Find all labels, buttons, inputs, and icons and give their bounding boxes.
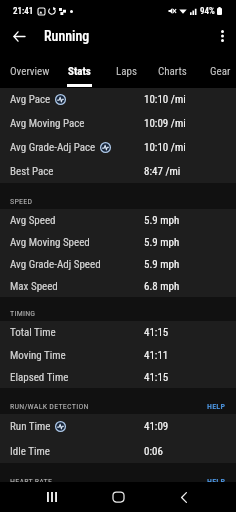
- staticText: 10:09 /mi: [144, 117, 186, 130]
- button[interactable]: Avg Pace: [0, 88, 236, 111]
- staticText: Max Speed: [10, 280, 58, 293]
- staticText: 8:47 /mi: [144, 165, 181, 178]
- button[interactable]: Back: [163, 482, 205, 512]
- staticText: 41:15: [144, 371, 169, 384]
- staticText: Run Time: [10, 420, 51, 433]
- button[interactable]: More options: [208, 22, 236, 50]
- staticText: Avg Grade-Adj Speed: [10, 258, 101, 271]
- staticText: Overview: [10, 65, 50, 78]
- staticText: HEART RATE: [10, 477, 53, 482]
- button[interactable]: Gear: [200, 50, 236, 88]
- button[interactable]: Avg Grade-Adj Pace: [0, 135, 236, 159]
- staticText: Stats: [68, 65, 91, 78]
- button[interactable]: Navigate up: [0, 22, 38, 50]
- button[interactable]: Avg Grade-Adj Speed: [0, 253, 236, 275]
- staticText: Avg Moving Speed: [10, 236, 90, 249]
- staticText: 6.8 mph: [144, 280, 180, 293]
- staticText: 5.9 mph: [144, 258, 180, 271]
- button[interactable]: Moving Time: [0, 344, 236, 366]
- staticText: HELP: [207, 477, 226, 482]
- staticText: Avg Speed: [10, 214, 56, 227]
- button[interactable]: HELP: [207, 477, 226, 482]
- staticText: 41:11: [144, 349, 169, 362]
- staticText: Best Pace: [10, 165, 54, 178]
- staticText: 0:06: [144, 445, 163, 458]
- button[interactable]: Elapsed Time: [0, 366, 236, 388]
- button[interactable]: Laps: [106, 50, 148, 88]
- staticText: SPEED: [10, 197, 33, 206]
- button[interactable]: Run Time: [0, 414, 236, 439]
- button[interactable]: Home: [97, 482, 139, 512]
- staticText: Avg Pace: [10, 93, 51, 106]
- staticText: 21:41: [13, 6, 34, 17]
- button[interactable]: Charts: [148, 50, 200, 88]
- button[interactable]: Avg Moving Speed: [0, 231, 236, 253]
- button[interactable]: Stats: [58, 50, 106, 88]
- staticText: Avg Grade-Adj Pace: [10, 141, 96, 154]
- staticText: 41:09: [144, 420, 169, 433]
- staticText: Charts: [158, 65, 187, 78]
- staticText: Elapsed Time: [10, 371, 69, 384]
- staticText: 94%: [200, 6, 215, 17]
- staticText: HELP: [207, 402, 226, 411]
- staticText: 10:10 /mi: [144, 141, 186, 154]
- staticText: TIMING: [10, 309, 36, 318]
- staticText: 10:10 /mi: [144, 93, 186, 106]
- staticText: 5.9 mph: [144, 236, 180, 249]
- button[interactable]: Avg Speed: [0, 209, 236, 231]
- button[interactable]: Best Pace: [0, 159, 236, 183]
- staticText: Idle Time: [10, 445, 50, 458]
- staticText: Avg Moving Pace: [10, 117, 85, 130]
- staticText: 5.9 mph: [144, 214, 180, 227]
- button[interactable]: Recent apps: [31, 482, 73, 512]
- staticText: Running: [44, 28, 90, 44]
- button[interactable]: Overview: [0, 50, 58, 88]
- button[interactable]: Max Speed: [0, 275, 236, 297]
- staticText: RUN/WALK DETECTION: [10, 402, 89, 411]
- staticText: Moving Time: [10, 349, 66, 362]
- button[interactable]: Idle Time: [0, 439, 236, 463]
- staticText: Total Time: [10, 326, 56, 339]
- button[interactable]: Total Time: [0, 321, 236, 344]
- staticText: Gear: [210, 65, 231, 78]
- button[interactable]: HELP: [207, 402, 226, 411]
- staticText: 41:15: [144, 326, 169, 339]
- staticText: Laps: [116, 65, 137, 78]
- button[interactable]: Avg Moving Pace: [0, 111, 236, 135]
